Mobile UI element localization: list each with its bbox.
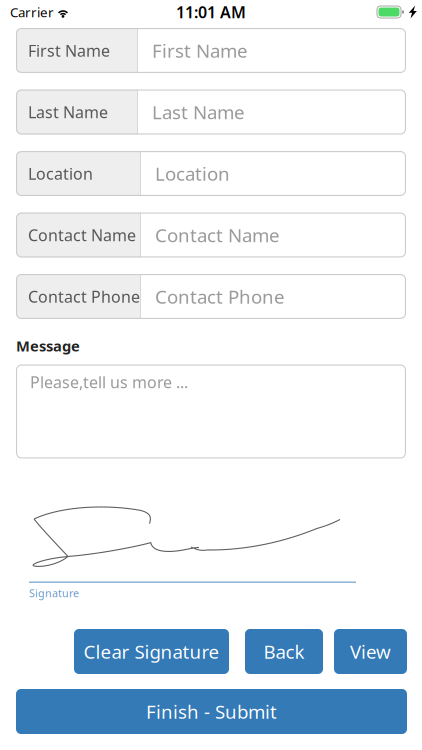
staticText: Finish - Submit <box>146 699 277 724</box>
button[interactable]: Contact Phone <box>16 274 406 319</box>
staticText: Back <box>263 639 304 664</box>
button[interactable]: View <box>334 629 407 674</box>
staticText: Carrier <box>10 3 54 21</box>
button[interactable]: First Name <box>16 28 406 73</box>
button[interactable]: Please,tell us more ... <box>16 364 406 458</box>
button[interactable]: Clear Signature <box>74 629 229 674</box>
button[interactable]: Finish - Submit <box>16 689 407 734</box>
staticText: Clear Signature <box>83 639 219 664</box>
staticText: Message <box>16 336 80 355</box>
staticText: Contact Name <box>28 224 136 246</box>
staticText: View <box>350 639 391 664</box>
button[interactable]: Contact Name <box>16 212 406 257</box>
staticText: First Name <box>28 40 110 61</box>
staticText: Last Name <box>28 101 108 123</box>
staticText: Location <box>28 163 93 184</box>
staticText: Please,tell us more ... <box>30 371 188 393</box>
staticText: Location <box>155 161 230 186</box>
button[interactable]: Back <box>245 629 323 674</box>
staticText: Signature <box>29 586 79 600</box>
staticText: First Name <box>152 38 248 63</box>
staticText: Last Name <box>152 100 245 124</box>
staticText: Contact Phone <box>155 284 285 309</box>
button[interactable]: Last Name <box>16 89 406 134</box>
staticText: Contact Name <box>155 223 280 247</box>
staticText: Contact Phone <box>28 286 140 307</box>
staticText: 11:01 AM <box>176 1 246 23</box>
button[interactable]: Location <box>16 151 406 196</box>
